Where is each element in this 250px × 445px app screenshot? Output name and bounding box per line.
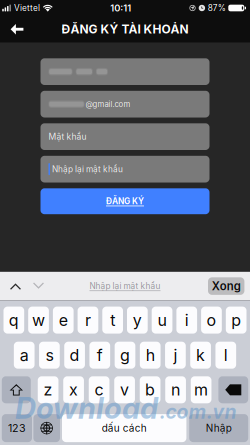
staticText: Xong xyxy=(212,279,241,293)
button[interactable]: Next keyboard xyxy=(33,414,60,442)
staticText: Nhập lại mật khẩu xyxy=(52,164,123,174)
staticText: k xyxy=(196,345,205,365)
button[interactable]: Back xyxy=(5,16,29,42)
staticText: b xyxy=(145,380,155,399)
staticText: y xyxy=(133,310,142,330)
button[interactable]: u xyxy=(152,307,172,334)
staticText: a xyxy=(20,345,29,365)
staticText: ĐĂNG KÝ xyxy=(106,196,144,206)
staticText: c xyxy=(95,380,104,399)
button[interactable]: i xyxy=(176,307,197,334)
staticText: i xyxy=(185,310,189,330)
staticText: m xyxy=(194,380,208,399)
button[interactable]: ĐĂNG KÝ xyxy=(40,188,209,214)
button[interactable]: k xyxy=(190,342,211,369)
button[interactable]: Nhập xyxy=(189,414,248,442)
button[interactable]: c xyxy=(89,376,109,403)
staticText: r xyxy=(85,310,91,330)
staticText: z xyxy=(44,380,53,399)
button[interactable]: Previous field xyxy=(4,272,27,300)
button[interactable]: w xyxy=(28,307,49,334)
button[interactable]: Xong xyxy=(208,277,244,295)
staticText: 87% xyxy=(208,3,226,13)
staticText: u xyxy=(158,310,167,330)
staticText: j xyxy=(173,345,177,365)
button[interactable]: d xyxy=(64,342,85,369)
staticText: n xyxy=(171,380,180,399)
staticText: p xyxy=(231,310,241,330)
staticText: g xyxy=(120,345,130,365)
button[interactable]: y xyxy=(127,307,148,334)
staticText: Nhập xyxy=(206,422,232,434)
button[interactable]: e xyxy=(53,307,74,334)
staticText: t xyxy=(110,310,115,330)
button[interactable]: a xyxy=(14,342,35,369)
staticText: s xyxy=(45,345,53,365)
staticText: w xyxy=(32,310,45,330)
staticText: o xyxy=(206,310,216,330)
staticText: .com.vn xyxy=(159,400,236,423)
staticText: Download xyxy=(15,390,158,426)
button[interactable]: j xyxy=(165,342,186,369)
button[interactable]: l xyxy=(215,342,236,369)
button[interactable]: Delete xyxy=(218,376,248,403)
staticText: × xyxy=(232,383,239,396)
button[interactable]: t xyxy=(102,307,123,334)
staticText: l xyxy=(224,345,228,365)
button[interactable]: s xyxy=(39,342,60,369)
staticText: q xyxy=(9,310,19,330)
button[interactable]: o xyxy=(201,307,222,334)
staticText: v xyxy=(120,380,129,399)
staticText: e xyxy=(59,310,68,330)
button[interactable]: Next field xyxy=(27,272,50,300)
button[interactable]: 123 xyxy=(2,414,32,442)
staticText: f xyxy=(97,345,103,365)
button[interactable]: g xyxy=(115,342,135,369)
staticText: ĐĂNG KÝ TÀI KHOẢN xyxy=(61,22,188,36)
button[interactable]: f xyxy=(89,342,110,369)
staticText: Nhập lại mật khẩu xyxy=(89,281,160,291)
button[interactable]: dấu cách xyxy=(62,414,186,442)
staticText: x xyxy=(69,380,78,399)
staticText: @gmail.com xyxy=(85,99,130,109)
button[interactable]: r xyxy=(78,307,98,334)
staticText: 123 xyxy=(8,422,26,434)
staticText: Viettel xyxy=(14,3,40,13)
button[interactable]: n xyxy=(165,376,186,403)
button[interactable]: Shift xyxy=(2,376,31,403)
button[interactable]: h xyxy=(140,342,161,369)
button[interactable]: z xyxy=(38,376,58,403)
button[interactable]: b xyxy=(140,376,160,403)
button[interactable]: p xyxy=(226,307,246,334)
button[interactable]: x xyxy=(63,376,84,403)
staticText: h xyxy=(146,345,155,365)
staticText: dấu cách xyxy=(102,422,147,434)
button[interactable]: q xyxy=(3,307,24,334)
staticText: Mật khẩu xyxy=(48,131,86,142)
button[interactable]: v xyxy=(114,376,135,403)
staticText: 10:11 xyxy=(110,2,131,14)
staticText: d xyxy=(70,345,80,365)
button[interactable]: m xyxy=(191,376,211,403)
